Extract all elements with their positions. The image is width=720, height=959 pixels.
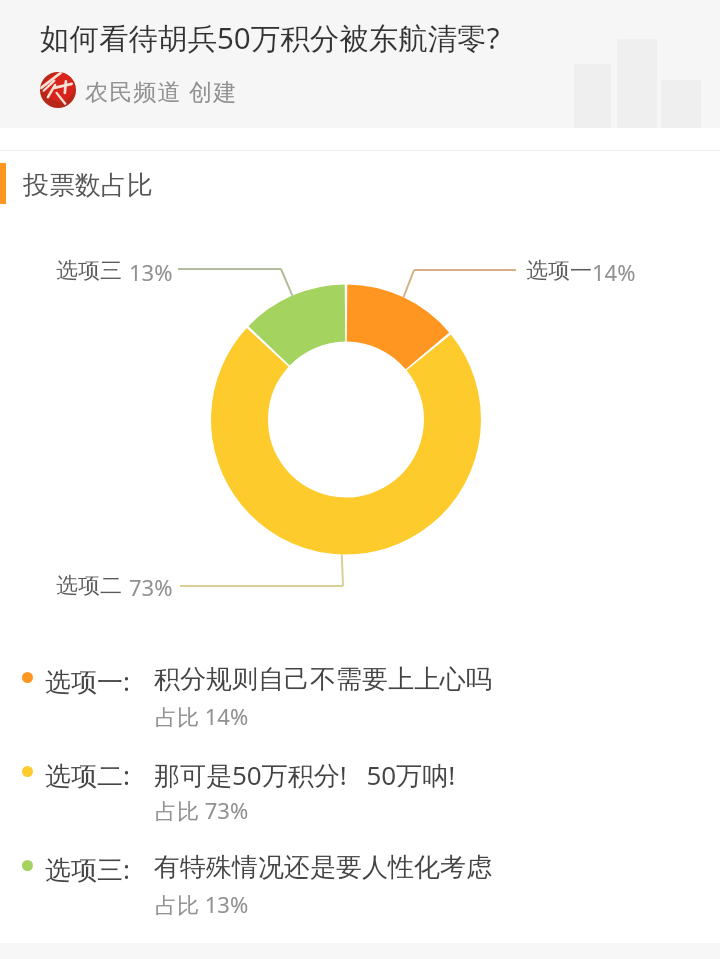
staticText: 积分规则自己不需要上上心吗: [154, 663, 492, 696]
button[interactable]: 选项二:: [0, 734, 720, 828]
staticText: 农民频道 创建: [85, 75, 238, 106]
staticText: 选项二: [56, 572, 122, 600]
staticText: 占比 73%: [155, 795, 249, 825]
staticText: 如何看待胡兵50万积分被东航清零?: [40, 17, 500, 57]
button[interactable]: 如何看待胡兵50万积分被东航清零?: [0, 0, 720, 128]
staticText: 选项三: [56, 257, 122, 285]
staticText: 投票数占比: [23, 169, 153, 202]
staticText: 有特殊情况还是要人性化考虑: [154, 851, 492, 884]
staticText: 73%: [129, 572, 173, 602]
staticText: 选项二:: [45, 757, 137, 793]
staticText: 选项一: [526, 257, 592, 285]
staticText: 那可是50万积分! 50万呐!: [154, 757, 456, 793]
button[interactable]: 选项一:: [0, 640, 720, 734]
staticText: 选项三:: [45, 851, 137, 887]
staticText: 占比 13%: [155, 889, 249, 919]
staticText: 选项一:: [45, 663, 137, 699]
other: 农民频道 logo: [40, 72, 76, 108]
staticText: 14%: [592, 257, 636, 287]
button[interactable]: 选项三:: [0, 828, 720, 922]
staticText: 13%: [129, 257, 173, 287]
staticText: 占比 14%: [155, 701, 249, 731]
